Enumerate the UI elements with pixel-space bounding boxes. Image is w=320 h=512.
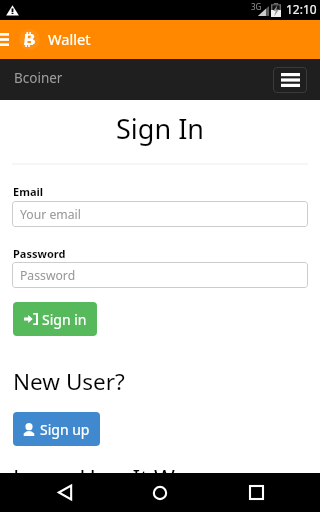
staticText: Password	[20, 267, 76, 284]
staticText: Bcoiner	[14, 69, 63, 87]
button[interactable]: Back	[40, 476, 88, 509]
button[interactable]: Sign in	[13, 302, 97, 336]
staticText: Sign in	[42, 310, 87, 329]
button[interactable]: Recents	[232, 476, 280, 509]
button[interactable]: Your email	[12, 201, 308, 227]
button[interactable]: Home	[136, 476, 184, 509]
button[interactable]: Password	[12, 262, 308, 288]
button[interactable]: Sign up	[13, 412, 100, 446]
staticText: Sign up	[40, 420, 90, 439]
staticText: Wallet	[48, 29, 91, 49]
staticText: New User?	[13, 366, 125, 397]
button[interactable]: Open navigation drawer	[0, 26, 9, 53]
staticText: 12:10	[286, 1, 317, 17]
button[interactable]: Toggle navigation	[273, 67, 307, 93]
staticText: 3G	[251, 1, 262, 12]
staticText: Your email	[20, 206, 81, 223]
staticText: Password	[13, 246, 66, 261]
staticText: Email	[13, 184, 44, 199]
staticText: Sign In	[0, 110, 320, 147]
staticText: Learn How It W	[13, 462, 176, 493]
